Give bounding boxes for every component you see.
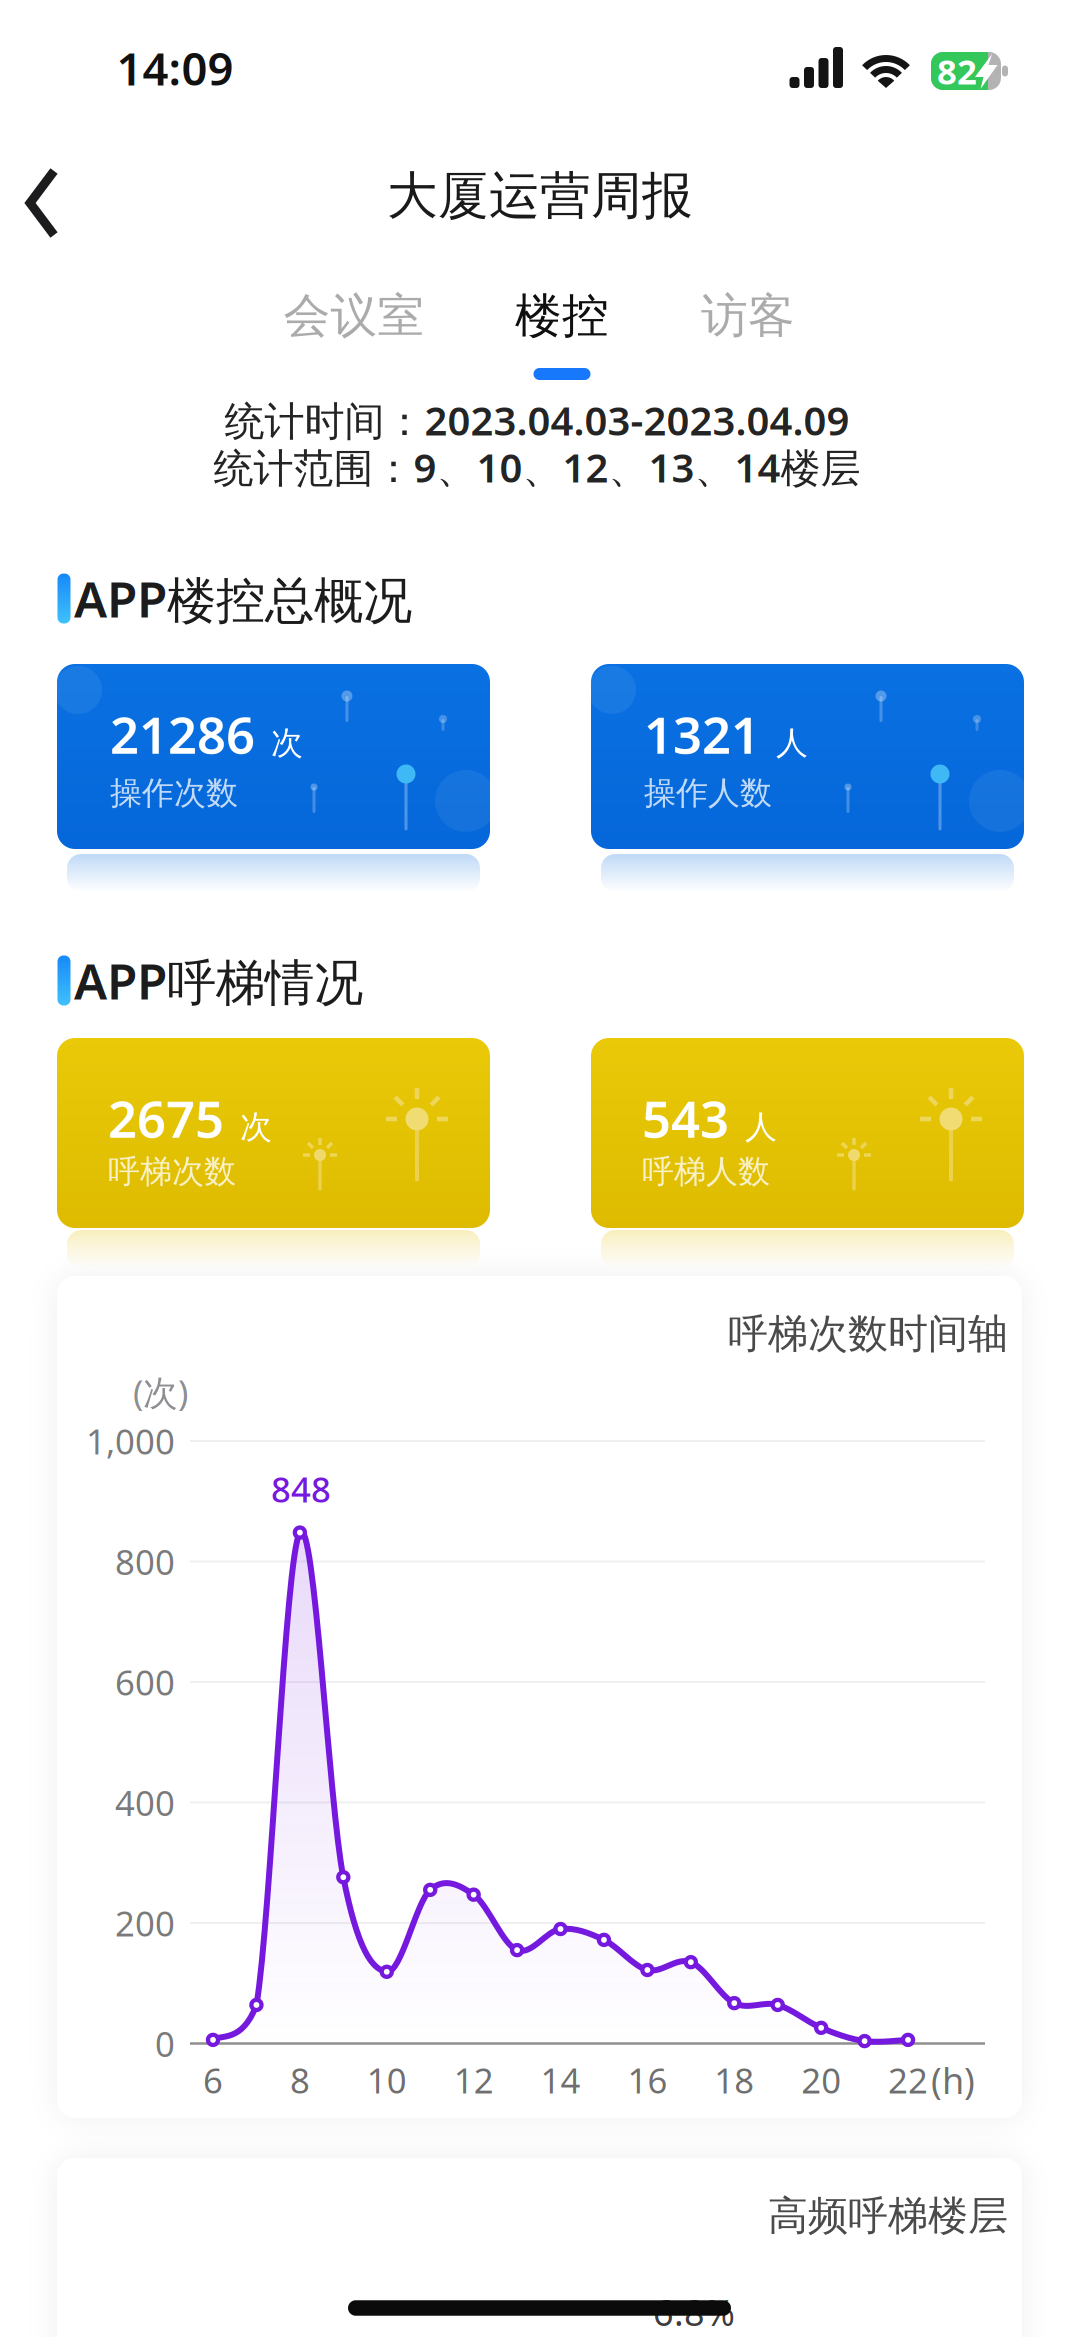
staticText: 14:09 xyxy=(116,38,233,98)
staticText: 6 xyxy=(203,2057,223,2103)
staticText: 操作次数 xyxy=(110,773,238,813)
staticText: 16 xyxy=(627,2057,667,2103)
staticText: 10 xyxy=(367,2057,407,2103)
staticText: 人 xyxy=(776,723,808,763)
button[interactable]: 楼控 xyxy=(492,281,632,351)
staticText: 次 xyxy=(271,723,303,763)
staticText: (次) xyxy=(133,1369,188,1415)
staticText: 统计时间：2023.04.03-2023.04.09 xyxy=(224,393,849,446)
staticText: 1,000 xyxy=(86,1418,175,1464)
staticText: 600 xyxy=(115,1659,175,1705)
staticText: 楼控 xyxy=(515,287,609,345)
staticText: 8 xyxy=(290,2057,310,2103)
staticText: 访客 xyxy=(701,287,795,345)
staticText: 0 xyxy=(155,2020,175,2066)
staticText: 18 xyxy=(714,2057,754,2103)
button[interactable]: Back xyxy=(4,159,84,247)
staticText: APP呼梯情况 xyxy=(74,948,363,1013)
staticText: 操作人数 xyxy=(644,773,772,813)
staticText: 高频呼梯楼层 xyxy=(768,2191,1008,2240)
staticText: 呼梯次数时间轴 xyxy=(728,1309,1008,1358)
staticText: 400 xyxy=(115,1779,175,1825)
staticText: 2675 xyxy=(108,1084,224,1152)
staticText: 1321 xyxy=(644,700,760,768)
staticText: 800 xyxy=(115,1538,175,1584)
staticText: 14 xyxy=(540,2057,580,2103)
staticText: 22 xyxy=(888,2057,928,2103)
staticText: 6.8% xyxy=(653,2288,735,2336)
staticText: 统计范围：9、10、12、13、14楼层 xyxy=(213,440,860,493)
button[interactable]: 访客 xyxy=(678,281,818,351)
staticText: 543 xyxy=(642,1084,729,1152)
staticText: 人 xyxy=(745,1107,777,1147)
staticText: 会议室 xyxy=(283,287,424,345)
staticText: 大厦运营周报 xyxy=(387,165,693,227)
staticText: 呼梯人数 xyxy=(642,1152,770,1191)
staticText: 200 xyxy=(115,1900,175,1946)
staticText: 12 xyxy=(454,2057,494,2103)
staticText: 21286 xyxy=(110,700,255,768)
staticText: 呼梯次数 xyxy=(108,1152,236,1191)
staticText: 20 xyxy=(801,2057,841,2103)
button[interactable]: 会议室 xyxy=(264,281,444,351)
staticText: 次 xyxy=(240,1107,272,1147)
staticText: 82 xyxy=(937,48,977,94)
staticText: 848 xyxy=(271,1466,331,1512)
staticText: (h) xyxy=(931,2056,975,2104)
staticText: APP楼控总概况 xyxy=(74,566,412,631)
